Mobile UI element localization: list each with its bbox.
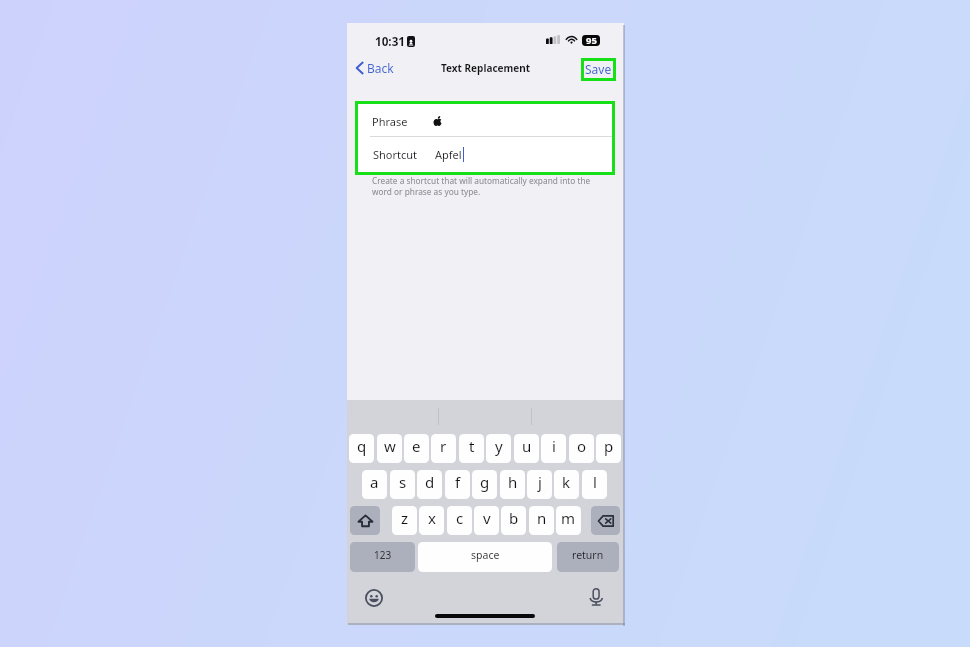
staticText: r	[440, 436, 447, 456]
button[interactable]: d	[417, 470, 442, 499]
staticText: 95	[586, 35, 597, 45]
staticText: u	[522, 436, 532, 456]
button[interactable]: k	[554, 470, 579, 499]
staticText: Back	[367, 60, 394, 76]
staticText: Shortcut	[373, 147, 418, 162]
staticText: h	[508, 472, 518, 492]
button[interactable]: t	[459, 434, 484, 463]
button[interactable]: a	[362, 470, 387, 499]
staticText: v	[483, 508, 491, 528]
button[interactable]: Dictation	[590, 588, 603, 607]
staticText: o	[577, 436, 587, 456]
staticText: Phrase	[372, 114, 408, 129]
staticText: c	[456, 508, 464, 528]
button[interactable]: space	[418, 542, 552, 572]
staticText: g	[480, 472, 490, 492]
staticText: k	[562, 472, 571, 492]
button[interactable]: Phrase	[358, 104, 612, 138]
staticText: m	[561, 508, 576, 528]
button[interactable]: q	[349, 434, 374, 463]
button[interactable]: 123	[350, 542, 415, 572]
staticText: Apfel	[435, 147, 462, 162]
button[interactable]: p	[596, 434, 621, 463]
staticText: f	[455, 472, 461, 492]
staticText: d	[425, 472, 435, 492]
button[interactable]: c	[447, 506, 472, 535]
button[interactable]: x	[419, 506, 444, 535]
staticText: i	[552, 436, 556, 456]
staticText: Text Replacement	[441, 61, 531, 75]
staticText: y	[495, 436, 503, 456]
button[interactable]: Shortcut	[358, 137, 612, 171]
button[interactable]: u	[514, 434, 539, 463]
button[interactable]: o	[569, 434, 594, 463]
button[interactable]: f	[445, 470, 470, 499]
button[interactable]: j	[527, 470, 552, 499]
staticText: return	[572, 548, 604, 562]
button[interactable]: return	[557, 542, 619, 572]
button[interactable]: y	[486, 434, 511, 463]
staticText: t	[469, 436, 475, 456]
button[interactable]: Emoji keyboard	[365, 589, 383, 607]
staticText: w	[384, 436, 396, 456]
staticText: e	[412, 436, 421, 456]
staticText: p	[604, 436, 614, 456]
button[interactable]: z	[392, 506, 417, 535]
button[interactable]: i	[541, 434, 566, 463]
staticText: q	[357, 436, 367, 456]
button[interactable]: v	[474, 506, 499, 535]
button[interactable]: h	[500, 470, 525, 499]
button[interactable]: Shift	[350, 506, 380, 535]
button[interactable]: b	[501, 506, 526, 535]
staticText: z	[401, 508, 409, 528]
button[interactable]: Save	[584, 61, 613, 78]
staticText: a	[370, 472, 379, 492]
staticText: 10:31	[375, 33, 406, 49]
button[interactable]: Backspace	[591, 506, 620, 535]
staticText: x	[428, 508, 436, 528]
button[interactable]: l	[582, 470, 607, 499]
button[interactable]: e	[404, 434, 429, 463]
button[interactable]: Back	[352, 57, 398, 79]
button[interactable]: r	[431, 434, 456, 463]
staticText: j	[538, 472, 542, 492]
staticText: b	[509, 508, 519, 528]
staticText: s	[399, 472, 407, 492]
staticText: l	[593, 472, 597, 492]
button[interactable]: g	[472, 470, 497, 499]
button[interactable]: n	[529, 506, 554, 535]
staticText: space	[471, 548, 500, 562]
staticText: n	[537, 508, 547, 528]
button[interactable]: m	[556, 506, 581, 535]
button[interactable]: s	[390, 470, 415, 499]
staticText: Create a shortcut that will automaticall…	[372, 175, 602, 197]
staticText: Save	[585, 61, 612, 77]
button[interactable]: w	[377, 434, 402, 463]
staticText: 123	[374, 548, 392, 562]
